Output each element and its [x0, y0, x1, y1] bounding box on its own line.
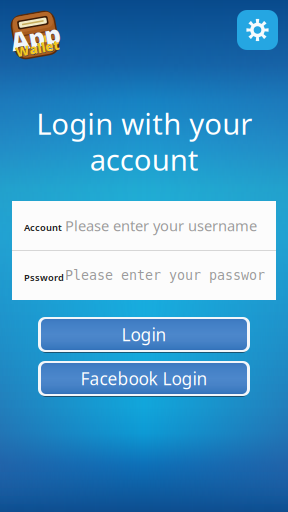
button[interactable]: Login	[38, 316, 250, 353]
staticText: Account	[24, 221, 62, 234]
staticText: Facebook Login	[80, 367, 207, 390]
staticText: App	[10, 21, 60, 55]
button[interactable]: Settings	[237, 10, 278, 50]
staticText: Wallet	[13, 40, 57, 58]
button[interactable]: Facebook Login	[38, 360, 250, 397]
staticText: Please enter your username	[65, 216, 257, 235]
staticText: Wallet	[13, 40, 57, 57]
staticText: App	[10, 21, 60, 54]
staticText: Please enter your password	[65, 268, 273, 283]
staticText: Login	[121, 323, 166, 346]
staticText: Login with your account	[36, 104, 252, 179]
staticText: Pssword	[24, 271, 64, 284]
